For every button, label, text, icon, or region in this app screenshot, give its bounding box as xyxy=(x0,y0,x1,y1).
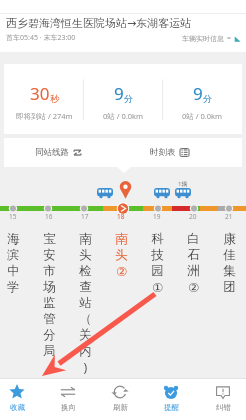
staticText: 16 xyxy=(45,212,53,225)
staticText: 南 头 检 查 站 （ 关 内 ) 0 · xyxy=(79,231,92,402)
staticText: 分 xyxy=(124,93,133,104)
staticText: 0站 / 0.0km xyxy=(182,111,223,121)
button[interactable]: 9 xyxy=(163,64,242,134)
staticText: 首车05:45 · 末车23:00 xyxy=(6,33,76,43)
button[interactable]: 收藏 xyxy=(0,379,41,420)
staticText: 科 技 园 ① xyxy=(151,231,164,295)
staticText: = xyxy=(227,33,232,43)
staticText: 17 xyxy=(81,212,89,225)
staticText: 宝 安 市 场 监 管 分 局 xyxy=(43,231,56,359)
staticText: 车辆实时信息 xyxy=(182,34,224,43)
staticText: 刷新 xyxy=(113,403,128,412)
button[interactable]: 20 xyxy=(176,212,210,402)
staticText: 同站线路 xyxy=(35,147,69,158)
button[interactable]: 16 xyxy=(32,212,66,402)
button[interactable]: 19 xyxy=(140,212,174,402)
button[interactable]: 提醒 xyxy=(147,379,195,420)
staticText: 18 xyxy=(117,212,125,225)
staticText: 西乡碧海湾恒生医院场站→东湖客运站 xyxy=(6,16,192,30)
staticText: 秒 xyxy=(50,93,59,104)
button[interactable]: 纠错 xyxy=(199,379,246,420)
staticText: 纠错 xyxy=(216,403,231,412)
button[interactable]: 同站线路 xyxy=(27,142,90,163)
staticText: 南 头 ② xyxy=(115,231,128,279)
staticText: 分 xyxy=(203,93,212,104)
staticText: 1辆 xyxy=(178,180,188,188)
staticText: 30 xyxy=(30,82,50,105)
button[interactable]: 换向 xyxy=(44,379,92,420)
staticText: 换向 xyxy=(61,403,76,412)
staticText: 21 xyxy=(225,212,233,225)
staticText: 海 滨 中 学 xyxy=(7,231,20,295)
staticText: 9 xyxy=(193,82,203,105)
staticText: 15 xyxy=(9,212,17,225)
button[interactable]: 21 xyxy=(212,212,246,402)
button[interactable]: 18 xyxy=(104,212,138,402)
staticText: 提醒 xyxy=(164,403,179,412)
staticText: 康 佳 集 团 xyxy=(223,231,236,295)
staticText: 0站 / 0.0km xyxy=(103,111,144,121)
staticText: 收藏 xyxy=(10,403,25,412)
staticText: 即将到站 / 274m xyxy=(16,111,73,121)
staticText: 白 石 洲 ② xyxy=(187,231,200,295)
staticText: 9 xyxy=(114,82,124,105)
button[interactable]: 15 xyxy=(0,212,30,402)
staticText: 19 xyxy=(153,212,161,225)
button[interactable]: 17 xyxy=(68,212,102,402)
button[interactable]: 9 xyxy=(84,64,163,134)
button[interactable]: 时刻表 xyxy=(150,142,205,163)
button[interactable]: 刷新 xyxy=(96,379,144,420)
staticText: 20 xyxy=(189,212,197,225)
staticText: 时刻表 xyxy=(150,147,176,158)
button[interactable]: 30 xyxy=(4,64,84,134)
